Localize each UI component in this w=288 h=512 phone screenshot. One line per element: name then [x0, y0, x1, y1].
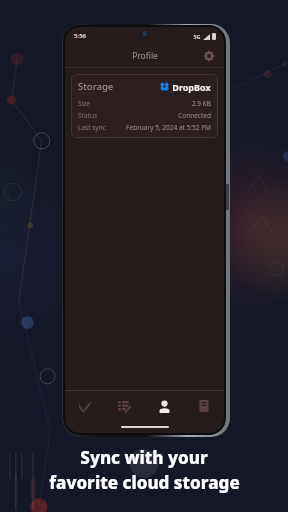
staticText: 5:56: [74, 32, 86, 40]
staticText: Storage: [78, 80, 114, 93]
staticText: Size: [78, 99, 90, 108]
staticText: DropBox: [172, 81, 211, 93]
button[interactable]: Tasks: [65, 391, 104, 421]
button[interactable]: Storage: [71, 74, 218, 138]
button[interactable]: Library: [184, 391, 224, 421]
staticText: Last sync: [78, 123, 106, 132]
staticText: Status: [78, 111, 98, 120]
staticText: Connected: [178, 111, 211, 120]
staticText: Profile: [132, 50, 158, 62]
staticText: February 5, 2024 at 5:52 PM: [126, 123, 211, 132]
staticText: favorite cloud storage: [49, 471, 240, 494]
button[interactable]: Profile: [144, 391, 184, 421]
button[interactable]: Lists: [104, 391, 144, 421]
staticText: 2.9 KB: [191, 99, 211, 108]
staticText: Sync with your: [80, 446, 208, 469]
staticText: 5G: [193, 33, 201, 40]
button[interactable]: Settings: [200, 47, 218, 65]
